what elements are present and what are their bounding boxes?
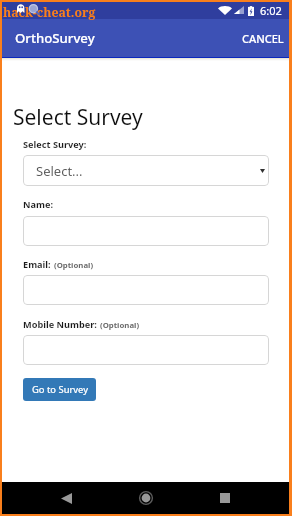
button[interactable]: Home [139, 491, 153, 505]
staticText: (Optional) [54, 260, 94, 271]
staticText: Name: [23, 198, 53, 211]
button[interactable] [23, 335, 269, 365]
staticText: 6:02 [260, 3, 282, 18]
staticText: Select Survey [13, 103, 143, 132]
staticText: hack-cheat.org [3, 4, 96, 21]
staticText: Email: [23, 258, 51, 271]
staticText: Mobile Number: [23, 318, 97, 331]
staticText: OrthoSurvey [15, 29, 95, 47]
button[interactable] [23, 216, 269, 246]
staticText: CANCEL [242, 31, 284, 46]
staticText: Select Survey: [23, 138, 87, 151]
staticText: Go to Survey [32, 383, 88, 396]
staticText: Select... [36, 162, 83, 180]
button[interactable]: Back [61, 493, 72, 504]
button[interactable]: CANCEL [235, 22, 289, 55]
button[interactable]: Go to Survey [23, 378, 96, 401]
button[interactable]: Select... [23, 155, 269, 186]
button[interactable] [23, 275, 269, 305]
staticText: (Optional) [100, 320, 140, 331]
